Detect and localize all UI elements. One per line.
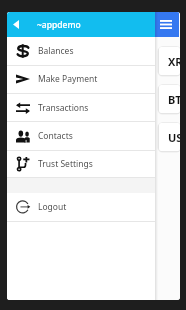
- button[interactable]: XRP: [159, 47, 180, 75]
- staticText: BTC: [168, 92, 180, 107]
- button[interactable]: Back: [7, 12, 33, 37]
- staticText: Transactions: [38, 102, 89, 114]
- button[interactable]: Make Payment: [7, 65, 155, 94]
- staticText: ~appdemo: [37, 19, 81, 31]
- button[interactable]: USD: [159, 123, 180, 151]
- button[interactable]: Logout: [7, 193, 155, 222]
- staticText: Make Payment: [38, 73, 98, 85]
- button[interactable]: Contacts: [7, 122, 155, 151]
- staticText: Contacts: [38, 130, 73, 142]
- staticText: Balances: [38, 45, 74, 57]
- button[interactable]: BTC: [159, 85, 180, 113]
- button[interactable]: Balances: [7, 37, 155, 66]
- button[interactable]: Transactions: [7, 94, 155, 122]
- staticText: Trust Settings: [38, 158, 93, 170]
- button[interactable]: Trust Settings: [7, 150, 155, 178]
- staticText: Logout: [38, 201, 67, 213]
- staticText: XRP: [168, 54, 180, 69]
- button[interactable]: Open navigation drawer: [155, 12, 179, 37]
- staticText: USD: [168, 130, 180, 145]
